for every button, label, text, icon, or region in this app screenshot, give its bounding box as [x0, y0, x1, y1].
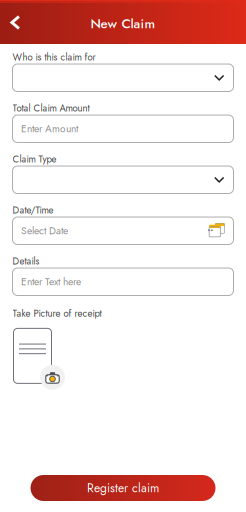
button[interactable]: Select Date	[12, 217, 233, 244]
button[interactable]	[12, 64, 233, 91]
button[interactable]: Enter Text here	[12, 268, 233, 295]
staticText: Total Claim Amount	[12, 101, 89, 115]
staticText: Select Date	[21, 223, 68, 238]
staticText: New Claim	[90, 14, 155, 33]
button[interactable]: Enter Amount	[12, 115, 233, 142]
staticText: Enter Text here	[21, 274, 81, 289]
staticText: Who is this claim for	[12, 50, 95, 64]
button[interactable]	[12, 166, 233, 193]
button[interactable]: Register claim	[30, 475, 215, 501]
staticText: Enter Amount	[21, 121, 78, 136]
staticText: Register claim	[87, 479, 159, 497]
button[interactable]: Take picture of receipt	[12, 328, 76, 404]
staticText: Details	[12, 254, 39, 268]
staticText: Date/Time	[12, 203, 53, 217]
staticText: Take Picture of receipt	[12, 306, 101, 320]
staticText: Claim Type	[12, 152, 56, 166]
button[interactable]: Back	[0, 7, 31, 37]
